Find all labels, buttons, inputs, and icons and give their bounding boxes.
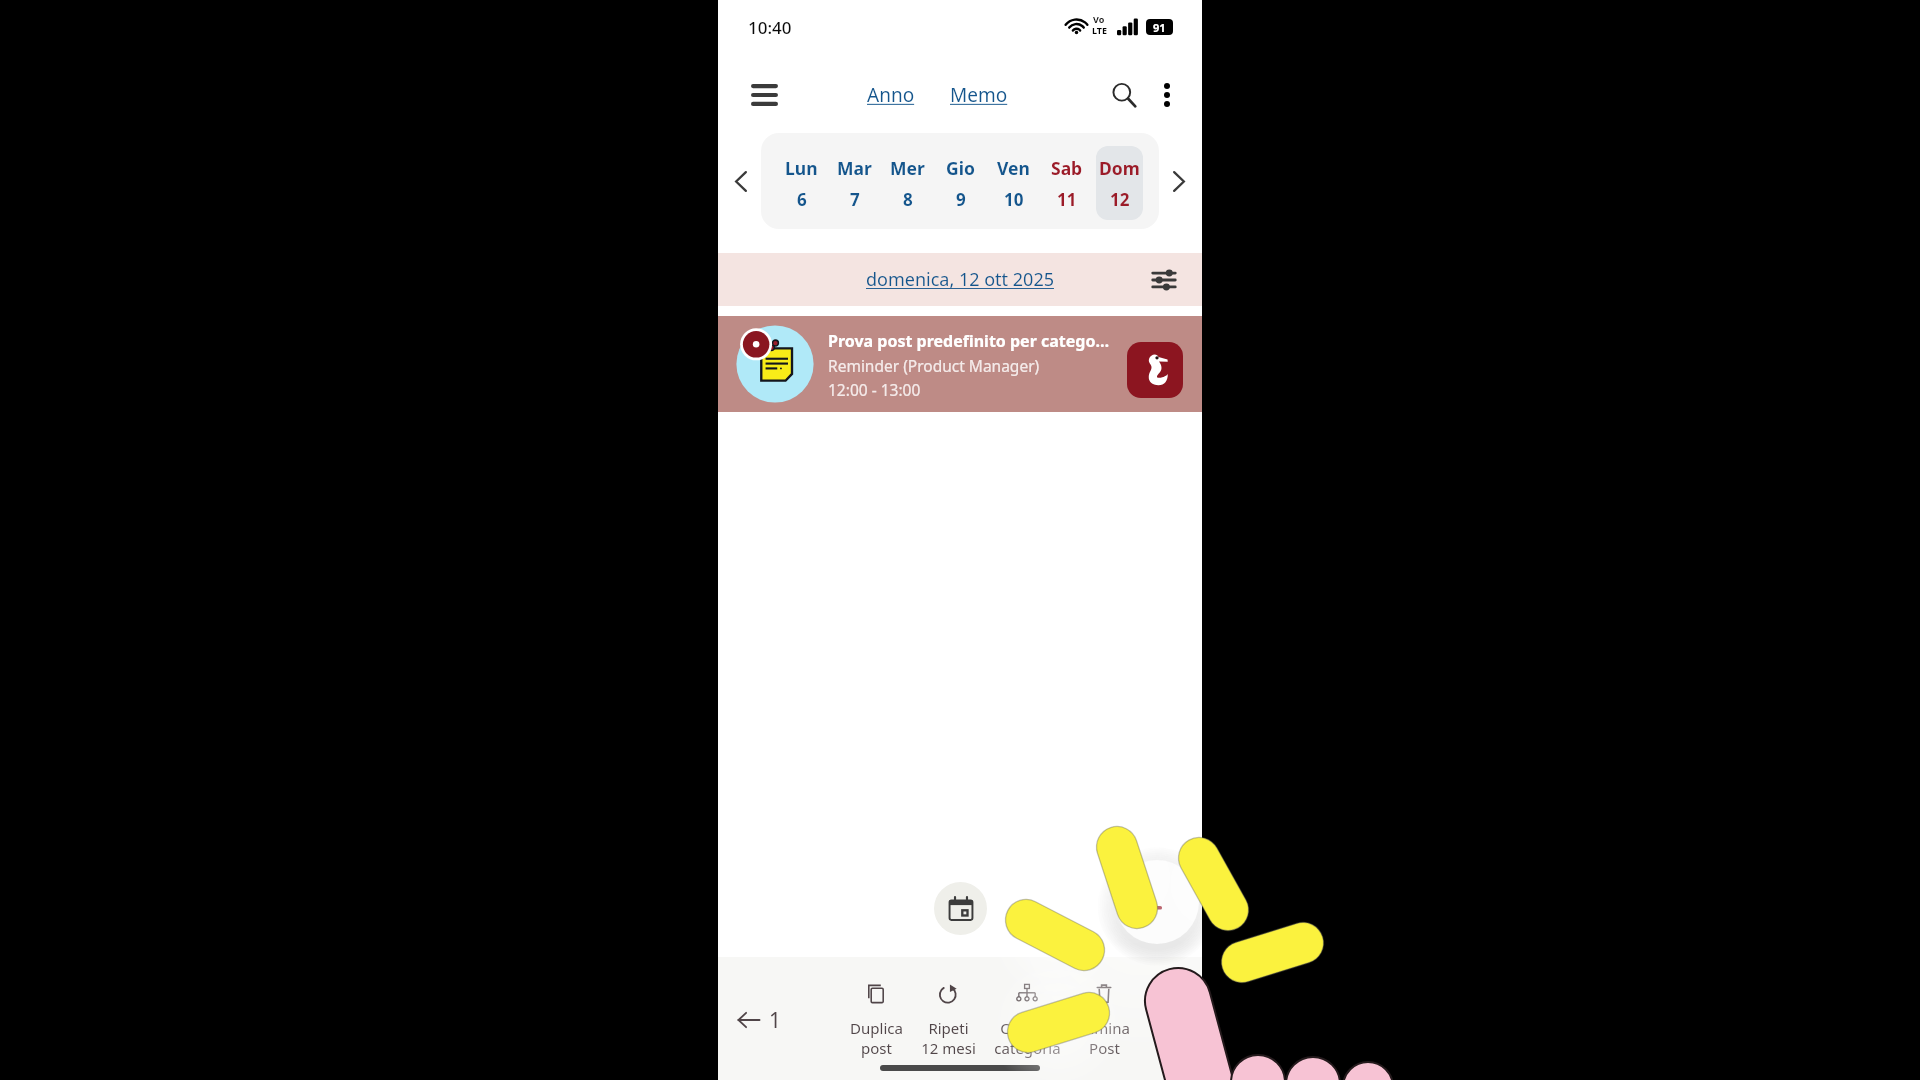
staticText: 10:40 <box>748 16 792 39</box>
staticText: Ripeti <box>928 1018 969 1038</box>
button[interactable]: Cambia <box>985 957 1069 1058</box>
button[interactable]: Lun <box>778 146 825 220</box>
staticText: Cambia <box>1000 1018 1054 1038</box>
button[interactable]: Dom <box>1096 146 1143 220</box>
button[interactable]: Category icon <box>1127 342 1183 398</box>
button[interactable]: Add event <box>1115 860 1199 944</box>
staticText: Post <box>1089 1038 1120 1058</box>
staticText: 12 <box>1110 188 1130 211</box>
staticText: categoria <box>994 1038 1061 1058</box>
staticText: 11 <box>1057 188 1077 211</box>
staticText: 9 <box>956 188 966 211</box>
button[interactable]: Mer <box>884 146 931 220</box>
staticText: Memo <box>950 82 1008 108</box>
button[interactable]: Ripeti <box>906 957 990 1058</box>
staticText: 91 <box>1153 20 1166 35</box>
staticText: Mer <box>890 156 925 180</box>
staticText: Mar <box>837 156 872 180</box>
button[interactable]: Calendar <box>934 882 987 935</box>
staticText: LTE <box>1092 24 1108 36</box>
staticText: Anno <box>867 82 915 108</box>
staticText: Ven <box>997 156 1030 180</box>
button[interactable]: Duplica <box>834 957 918 1058</box>
staticText: 1 <box>769 1006 782 1035</box>
button[interactable]: Gio <box>937 146 984 220</box>
staticText: 10 <box>1004 188 1024 211</box>
staticText: Gio <box>946 156 975 180</box>
button[interactable]: Filter <box>1144 260 1184 300</box>
button[interactable]: Next week <box>1160 133 1198 229</box>
staticText: 12:00 - 13:00 <box>828 379 921 400</box>
button[interactable]: Ven <box>990 146 1037 220</box>
button[interactable]: Search <box>1102 73 1146 117</box>
button[interactable]: Previous week <box>722 133 760 229</box>
staticText: 8 <box>903 188 913 211</box>
button[interactable]: Mar <box>831 146 878 220</box>
button[interactable]: Memo <box>942 72 1016 118</box>
staticText: Prova post predefinito per catego… <box>828 330 1110 352</box>
button[interactable]: Sab <box>1043 146 1090 220</box>
button[interactable]: Back, 1 selected <box>730 1001 784 1039</box>
staticText: Reminder (Product Manager) <box>828 355 1040 376</box>
staticText: post <box>861 1038 892 1058</box>
staticText: 7 <box>850 188 860 211</box>
button[interactable]: Elimina <box>1062 957 1146 1058</box>
staticText: Vo <box>1093 13 1105 25</box>
staticText: Duplica <box>850 1018 903 1038</box>
staticText: Lun <box>785 156 818 180</box>
button[interactable]: Anno <box>859 72 923 118</box>
button[interactable]: Menu <box>742 73 786 117</box>
staticText: Dom <box>1099 156 1140 180</box>
staticText: domenica, 12 ott 2025 <box>866 267 1054 292</box>
button[interactable]: domenica, 12 ott 2025 <box>718 253 1202 306</box>
staticText: Sab <box>1051 156 1083 180</box>
button[interactable]: Prova post predefinito per catego… <box>718 316 1202 412</box>
staticText: 6 <box>797 188 807 211</box>
staticText: Elimina <box>1078 1018 1130 1038</box>
staticText: 12 mesi <box>921 1038 976 1058</box>
button[interactable]: More options <box>1148 76 1186 114</box>
